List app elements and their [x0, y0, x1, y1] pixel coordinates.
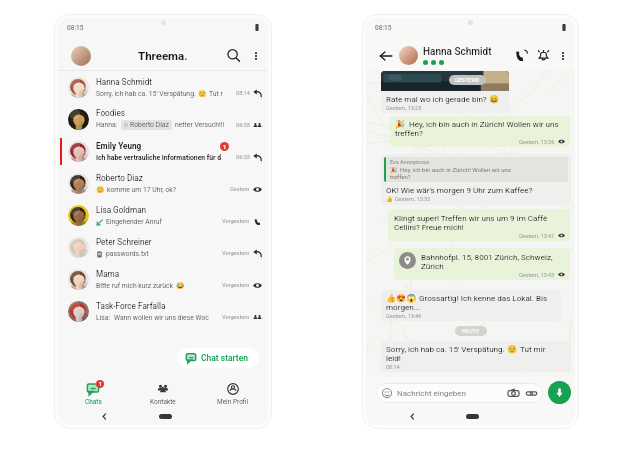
staticText: 08:15	[67, 24, 84, 32]
staticText: 🎉	[395, 119, 406, 128]
staticText: Gestern, 13:26	[519, 139, 555, 145]
staticText: Rate mal wo ich gerade bin?	[386, 94, 487, 103]
staticText: Gestern, 13:46	[386, 313, 422, 319]
staticText: 1	[223, 144, 227, 150]
staticText: Gestern, 13:25	[386, 105, 422, 111]
staticText: 08:14	[386, 364, 400, 370]
button[interactable]: Peter Schreiner	[58, 231, 268, 263]
button[interactable]: Chat starten	[186, 348, 248, 368]
staticText: 1	[99, 381, 102, 387]
staticText: Sorry, ich hab ca. 15' Verspätung.	[386, 344, 505, 353]
staticText: 🎉	[390, 166, 398, 173]
button[interactable]: Senden	[548, 381, 571, 404]
staticText: Hey, ich bin auch in Zürich! Wollen wir …	[400, 166, 511, 173]
staticText: 08:15	[375, 24, 392, 32]
button[interactable]: Mein Profil	[71, 46, 91, 66]
button[interactable]: Zurück	[408, 412, 417, 421]
staticText: Roberto Diaz	[96, 173, 143, 183]
button[interactable]: Lisa Goldman	[58, 199, 268, 231]
staticText: Ich habe vertrauliche Informationen für …	[96, 154, 222, 162]
button[interactable]: Foodies	[58, 103, 268, 135]
staticText: Cellini? Freue mich!	[394, 222, 464, 231]
staticText: OK! Wie wär's morgen 9 Uhr zum Kaffee?	[386, 185, 533, 194]
staticText: 08:14	[236, 90, 250, 97]
staticText: Nachricht eingeben	[397, 389, 466, 398]
button[interactable]: Kontakte	[128, 380, 198, 408]
staticText: Vorgestern	[222, 218, 250, 225]
staticText: Threema.	[138, 49, 188, 62]
button[interactable]: Zurück	[379, 49, 393, 63]
staticText: Grossartig! Ich kenne das Lokal. Bis	[419, 293, 548, 302]
staticText: Task-Force Farfalla	[96, 301, 166, 311]
staticText: 👍😍😱	[386, 293, 417, 302]
staticText: leid!	[386, 353, 401, 362]
staticText: Vorgestern	[222, 282, 250, 289]
button[interactable]: Mama	[58, 263, 268, 295]
button[interactable]: Startbildschirm	[466, 414, 479, 419]
staticText: Eingehender Anruf	[106, 218, 162, 226]
staticText: Chats	[85, 398, 102, 406]
staticText: 😂	[176, 282, 185, 290]
staticText: 06:33	[236, 154, 250, 161]
staticText: komme um 17 Uhr, ok?	[107, 186, 176, 194]
staticText: Mama	[96, 269, 120, 279]
staticText: Vorgestern	[222, 250, 250, 257]
staticText: HEUTE	[462, 328, 480, 334]
button[interactable]: Zurück	[100, 412, 109, 421]
staticText: Vorgestern	[222, 314, 250, 321]
staticText: Roberto Diaz	[130, 121, 169, 129]
staticText: Foodies	[96, 108, 125, 118]
staticText: Gestern	[230, 186, 250, 193]
staticText: Lisa:	[96, 314, 111, 322]
staticText: 😊	[507, 344, 518, 353]
staticText: Sorry, ich hab ca. 15' Verspätung.	[96, 90, 196, 98]
button[interactable]: Benachrichtigungen	[537, 49, 550, 62]
staticText: Tut mir	[520, 344, 546, 353]
button[interactable]: Kontaktbild	[399, 46, 418, 65]
button[interactable]: Roberto Diaz	[58, 167, 268, 199]
staticText: Klingt super! Treffen wir uns um 9 im Ca…	[394, 213, 548, 222]
staticText: Hey, ich bin auch in Zürich! Wollen wir …	[409, 119, 559, 128]
button[interactable]: Weitere Optionen	[557, 50, 569, 62]
staticText: Gestern, 13:41	[519, 233, 555, 239]
button[interactable]: Mein Profil	[198, 380, 268, 408]
button[interactable]: Kamera	[508, 388, 519, 399]
staticText: Lisa Goldman	[96, 205, 147, 215]
staticText: Hanna Schmidt	[96, 77, 152, 87]
staticText: treffen?	[395, 128, 423, 137]
staticText: Wann wollen wir uns diese Woc	[114, 314, 209, 322]
staticText: 😊	[198, 90, 207, 98]
button[interactable]: Nachricht eingeben	[382, 383, 537, 403]
staticText: Emily Yeung	[96, 141, 142, 151]
button[interactable]: Emily Yeung	[58, 135, 268, 167]
button[interactable]: Weitere Optionen	[250, 50, 262, 62]
button[interactable]: Startbildschirm	[159, 414, 172, 419]
staticText: Peter Schreiner	[96, 237, 152, 247]
staticText: 😊	[96, 186, 105, 194]
staticText: 👍	[386, 196, 393, 202]
staticText: passwords.txt	[106, 250, 149, 258]
staticText: Tut r	[209, 90, 223, 98]
button[interactable]: Anrufen	[515, 49, 528, 62]
button[interactable]: Hanna Schmidt	[58, 71, 268, 103]
staticText: 😄	[489, 94, 500, 103]
staticText: GESTERN	[455, 77, 480, 83]
staticText: netter Versuch!!!	[175, 121, 225, 129]
button[interactable]: Suchen	[226, 48, 241, 63]
staticText: Kontakte	[150, 398, 176, 406]
staticText: Hanna Schmidt	[423, 46, 492, 58]
staticText: Hanna:	[96, 121, 118, 129]
staticText: Gestern, 13:43	[519, 272, 555, 278]
staticText: Gestern, 13:32	[395, 196, 431, 202]
staticText: treffen?	[390, 173, 411, 180]
button[interactable]: Task-Force Farfalla	[58, 295, 268, 327]
staticText: Chat starten	[201, 353, 248, 363]
button[interactable]: 1	[58, 380, 128, 408]
staticText: morgen...	[386, 302, 421, 311]
staticText: 06:53	[236, 122, 250, 129]
staticText: Mein Profil	[217, 398, 249, 406]
staticText: Bahnhofpl. 15, 8001 Zürich, Schweiz,	[421, 252, 553, 261]
button[interactable]: Anhang	[526, 388, 537, 399]
staticText: Eva Anonymous	[390, 159, 430, 165]
staticText: Zürich	[421, 261, 444, 270]
